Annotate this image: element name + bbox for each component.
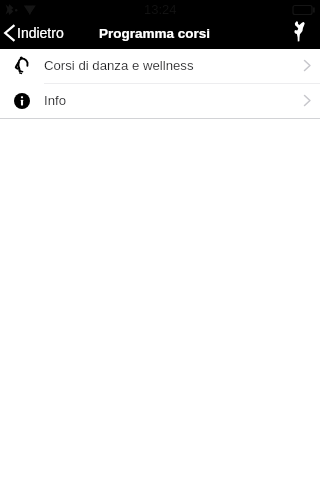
staticText: Corsi di danza e wellness — [44, 58, 293, 73]
staticText: Info — [44, 93, 293, 108]
staticText: Indietro — [17, 25, 64, 41]
staticText: Programma corsi — [99, 26, 211, 41]
other: Info — [0, 84, 44, 118]
staticText: 13:24 — [144, 2, 177, 17]
button[interactable]: Dance — [0, 49, 320, 83]
button[interactable]: Logo — [288, 21, 314, 47]
other: Dance — [0, 49, 44, 83]
button[interactable]: Indietro — [0, 19, 72, 49]
button[interactable]: Info — [0, 84, 320, 118]
